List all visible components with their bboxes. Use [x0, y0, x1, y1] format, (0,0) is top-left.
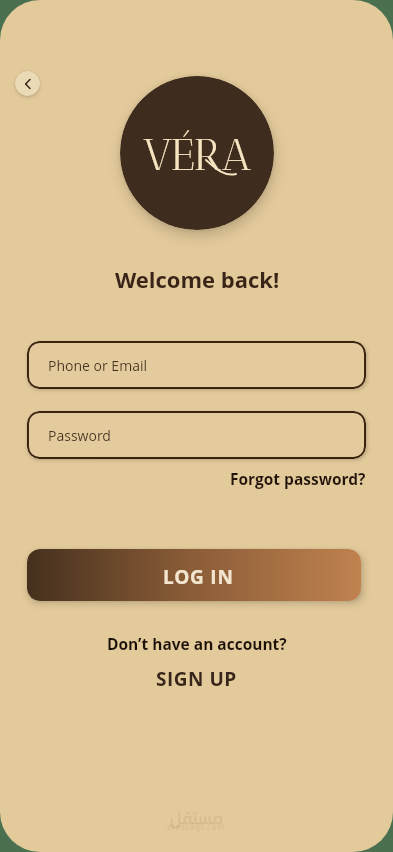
button[interactable]: Back	[15, 71, 40, 96]
staticText: Don’t have an account?	[107, 633, 287, 654]
staticText: SIGN UP	[156, 666, 237, 692]
staticText: Password	[48, 426, 111, 445]
staticText: Phone or Email	[48, 356, 148, 375]
button[interactable]: Password	[27, 411, 366, 459]
staticText: VÉRA	[143, 129, 252, 181]
staticText: LOG IN	[163, 564, 234, 590]
button[interactable]: SIGN UP	[146, 661, 247, 697]
button[interactable]: LOG IN	[27, 549, 361, 601]
button[interactable]: Forgot password?	[228, 463, 368, 494]
staticText: Welcome back!	[115, 264, 280, 294]
staticText: Forgot password?	[230, 468, 366, 489]
staticText: مستقل	[170, 802, 224, 834]
button[interactable]: Phone or Email	[27, 341, 366, 389]
staticText: mostaql.com	[167, 821, 226, 832]
